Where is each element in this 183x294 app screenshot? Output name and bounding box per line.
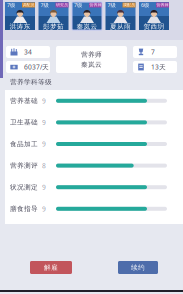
staticText: 贺西玥	[143, 22, 164, 31]
staticText: 7级	[107, 1, 115, 9]
staticText: 9	[42, 204, 46, 213]
staticText: 8	[42, 161, 46, 170]
button[interactable]: 7级	[72, 2, 102, 30]
staticText: 研究员	[56, 2, 68, 7]
staticText: 状况测定	[10, 183, 38, 191]
staticText: 7级	[74, 1, 82, 9]
button[interactable]: 解雇	[30, 261, 72, 274]
button[interactable]: 续约	[118, 261, 158, 274]
staticText: 洪涛东	[9, 22, 30, 31]
staticText: 营养师	[89, 2, 101, 7]
button[interactable]: 7级	[105, 2, 135, 30]
staticText: 营养师	[156, 2, 168, 7]
staticText: 9	[42, 183, 46, 192]
button[interactable]: 6级	[139, 2, 169, 30]
staticText: 7级	[7, 1, 15, 9]
staticText: 膳食指导	[10, 205, 38, 213]
staticText: 34	[24, 48, 32, 56]
staticText: 调配员	[123, 2, 135, 7]
staticText: 13天	[151, 63, 166, 71]
staticText: 9	[42, 118, 46, 127]
staticText: 秦岚云	[76, 22, 97, 31]
staticText: 7	[151, 48, 155, 56]
staticText: 9	[42, 96, 46, 105]
staticText: 6级	[141, 1, 149, 9]
staticText: 营养基础	[10, 97, 38, 105]
button[interactable]: 7级	[38, 2, 68, 30]
staticText: 7级	[40, 1, 48, 9]
staticText: 秦岚云	[81, 60, 102, 69]
staticText: 解雇	[44, 263, 58, 272]
button[interactable]: 7级	[5, 2, 35, 30]
staticText: 9	[42, 140, 46, 148]
staticText: 卫生基础	[10, 118, 38, 126]
staticText: 营养师	[81, 50, 102, 58]
staticText: 食品加工	[10, 140, 38, 148]
staticText: 6037/天	[24, 63, 49, 71]
staticText: 彭梦茹	[43, 22, 64, 31]
staticText: 夏从雨	[110, 22, 131, 31]
staticText: 续约	[131, 263, 145, 272]
staticText: 营养学科等级	[10, 78, 52, 86]
staticText: 营养测评	[10, 161, 38, 170]
staticText: 调配员	[22, 2, 34, 7]
